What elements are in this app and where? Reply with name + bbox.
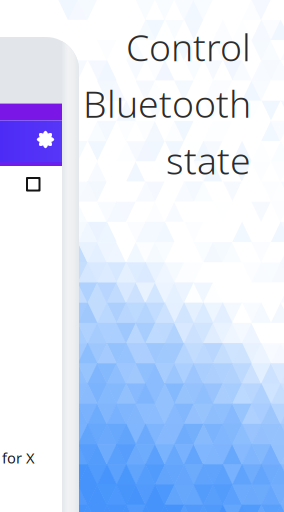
button[interactable]: Settings <box>31 125 59 153</box>
staticText: Bluetooth <box>83 79 251 128</box>
staticText: for X <box>2 448 35 467</box>
button[interactable]: Toggle <box>26 177 40 191</box>
staticText: state <box>166 135 251 185</box>
staticText: Control <box>126 22 251 72</box>
